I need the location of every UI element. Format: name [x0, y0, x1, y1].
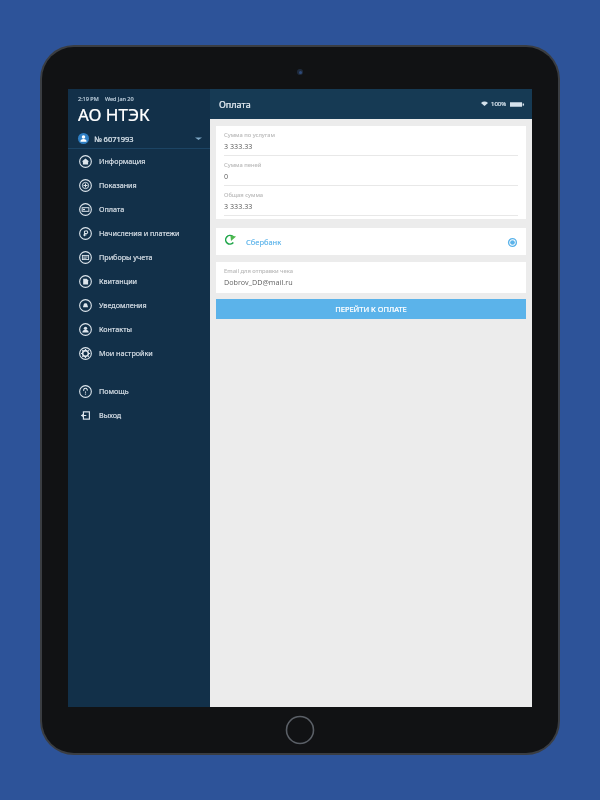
button[interactable]: Email для отправки чека — [216, 262, 526, 293]
staticText: ПЕРЕЙТИ К ОПЛАТЕ — [335, 304, 407, 314]
staticText: Общая сумма — [224, 191, 264, 199]
button[interactable]: Показания — [68, 173, 210, 197]
button[interactable]: Помощь — [68, 379, 210, 403]
staticText: Wed Jan 20 — [105, 95, 134, 102]
staticText: Контакты — [99, 324, 132, 334]
button[interactable]: № 6071993 — [68, 131, 210, 148]
staticText: Помощь — [99, 386, 129, 396]
button[interactable]: Мои настройки — [68, 341, 210, 365]
button[interactable]: Квитанции — [68, 269, 210, 293]
button[interactable]: Сбербанк — [216, 228, 526, 255]
staticText: АО НТЭК — [78, 103, 150, 126]
button[interactable]: Приборы учета — [68, 245, 210, 269]
staticText: Мои настройки — [99, 348, 153, 358]
button[interactable]: Оплата — [68, 197, 210, 221]
staticText: Уведомления — [99, 300, 147, 310]
staticText: Квитанции — [99, 276, 138, 286]
staticText: № 6071993 — [94, 134, 134, 144]
staticText: Сумма по услугам — [224, 131, 275, 139]
staticText: 100% — [491, 100, 507, 108]
staticText: 3 333.33 — [224, 141, 253, 151]
staticText: Оплата — [219, 98, 251, 110]
staticText: Показания — [99, 180, 137, 190]
button[interactable]: Начисления и платежи — [68, 221, 210, 245]
staticText: 3 333.33 — [224, 201, 253, 211]
staticText: Оплата — [99, 204, 125, 214]
button[interactable]: Выход — [68, 403, 210, 427]
button[interactable]: ПЕРЕЙТИ К ОПЛАТЕ — [216, 299, 526, 319]
staticText: 2:19 PM — [78, 95, 99, 102]
button[interactable]: Контакты — [68, 317, 210, 341]
button[interactable]: Уведомления — [68, 293, 210, 317]
staticText: Выход — [99, 410, 122, 420]
staticText: 0 — [224, 171, 229, 181]
staticText: Начисления и платежи — [99, 228, 180, 238]
staticText: Сбербанк — [246, 237, 282, 247]
staticText: Dobrov_DD@mail.ru — [224, 277, 293, 287]
button[interactable]: Выбрать Сбербанк — [504, 234, 520, 250]
staticText: Информация — [99, 156, 146, 166]
staticText: Сумма пеней — [224, 161, 262, 169]
staticText: Приборы учета — [99, 252, 153, 262]
button[interactable]: Информация — [68, 149, 210, 173]
staticText: Email для отправки чека — [224, 267, 293, 275]
